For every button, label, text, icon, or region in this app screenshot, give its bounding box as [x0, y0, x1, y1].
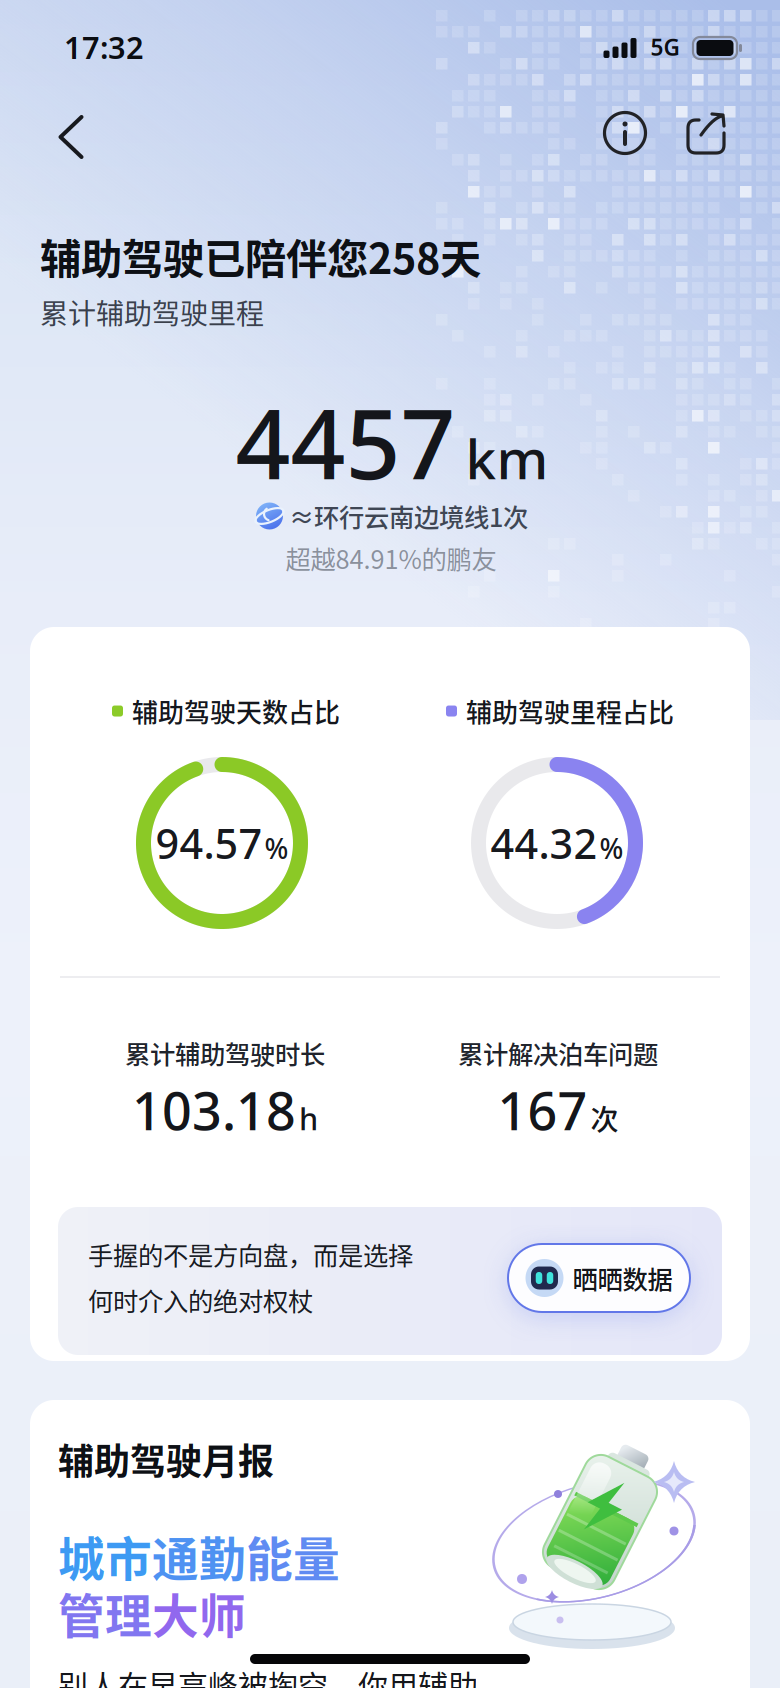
- staticText: %: [599, 830, 623, 867]
- staticText: h: [299, 1098, 318, 1139]
- button[interactable]: Back: [46, 103, 95, 171]
- staticText: 167: [497, 1075, 587, 1145]
- button[interactable]: 晒晒数据: [508, 1244, 690, 1312]
- staticText: 手握的不是方向盘，而是选择: [88, 1236, 413, 1272]
- staticText: 辅助驾驶里程占比: [466, 692, 674, 730]
- staticText: 辅助驾驶已陪伴您258天: [40, 226, 481, 286]
- staticText: 别人在早高峰被掏空，你用辅助: [58, 1662, 478, 1688]
- staticText: 能量: [246, 1522, 340, 1590]
- staticText: 4457: [235, 378, 455, 506]
- button[interactable]: Info: [597, 105, 653, 161]
- staticText: 次: [590, 1098, 618, 1138]
- staticText: km: [465, 422, 548, 494]
- button[interactable]: Share: [680, 105, 736, 161]
- staticText: 累计辅助驾驶时长: [125, 1035, 325, 1071]
- staticText: 辅助驾驶月报: [58, 1433, 274, 1485]
- staticText: 何时介入的绝对权杖: [88, 1281, 313, 1318]
- staticText: 辅助驾驶天数占比: [132, 692, 340, 730]
- staticText: 94.57: [155, 816, 262, 870]
- staticText: 管理: [58, 1579, 152, 1647]
- staticText: ≈环行云南边境线1次: [289, 498, 528, 534]
- staticText: 44.32: [490, 816, 597, 870]
- staticText: 超越84.91%的鹏友: [285, 540, 496, 576]
- staticText: 晒晒数据: [572, 1260, 672, 1296]
- staticText: 103.18: [132, 1075, 296, 1145]
- staticText: 累计解决泊车问题: [458, 1035, 658, 1071]
- staticText: 城市: [58, 1522, 152, 1590]
- staticText: %: [264, 830, 288, 867]
- staticText: 通勤: [152, 1522, 246, 1590]
- staticText: 5G: [650, 32, 679, 62]
- staticText: 大师: [152, 1579, 246, 1647]
- staticText: 17:32: [64, 27, 144, 67]
- staticText: 累计辅助驾驶里程: [40, 292, 264, 332]
